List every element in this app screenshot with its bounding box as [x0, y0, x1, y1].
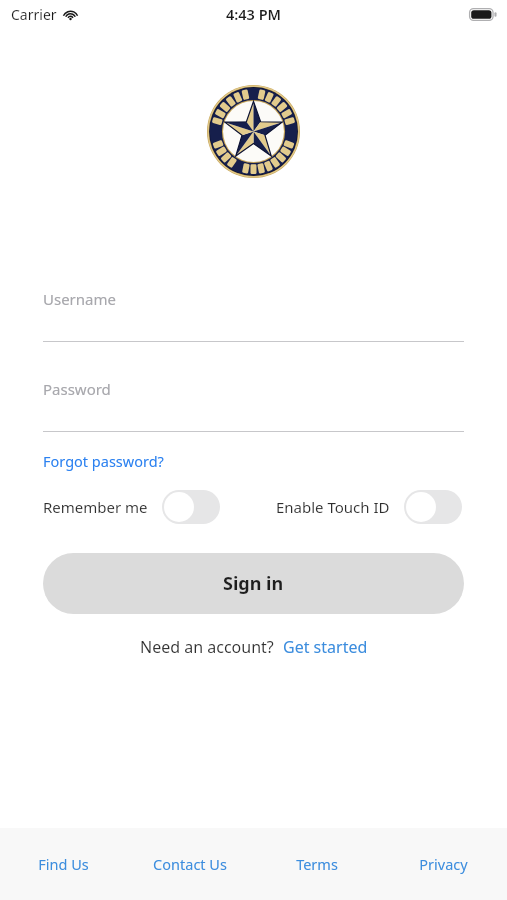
staticText: Need an account? — [140, 636, 274, 658]
button[interactable]: Find Us — [0, 828, 126, 900]
staticText: Terms — [296, 854, 338, 874]
staticText: 4:43 PM — [226, 4, 282, 24]
staticText: Forgot password? — [43, 451, 164, 471]
button[interactable]: Enable Touch ID — [276, 490, 462, 524]
staticText: Carrier — [11, 5, 57, 24]
button[interactable]: Forgot password? — [43, 451, 164, 471]
button[interactable]: Username — [43, 289, 464, 342]
staticText: Remember me — [43, 497, 148, 517]
staticText: Get started — [283, 636, 368, 658]
other: Enable Touch ID — [404, 490, 462, 524]
button[interactable]: Contact Us — [126, 828, 253, 900]
other: Remember me — [162, 490, 220, 524]
staticText: Privacy — [419, 854, 468, 874]
button[interactable]: Terms — [253, 828, 380, 900]
button[interactable]: Password — [43, 379, 464, 432]
button[interactable]: Get started — [283, 636, 368, 658]
staticText: Find Us — [38, 854, 89, 874]
staticText: Username — [43, 289, 116, 309]
button[interactable]: Sign in — [43, 553, 464, 614]
staticText: Password — [43, 379, 111, 399]
staticText: Enable Touch ID — [276, 497, 390, 517]
button[interactable]: Privacy — [380, 828, 507, 900]
staticText: Sign in — [223, 571, 284, 596]
button[interactable]: Remember me — [43, 490, 220, 524]
staticText: Contact Us — [153, 854, 227, 874]
other: Karnes County National Bank logo — [207, 85, 300, 178]
